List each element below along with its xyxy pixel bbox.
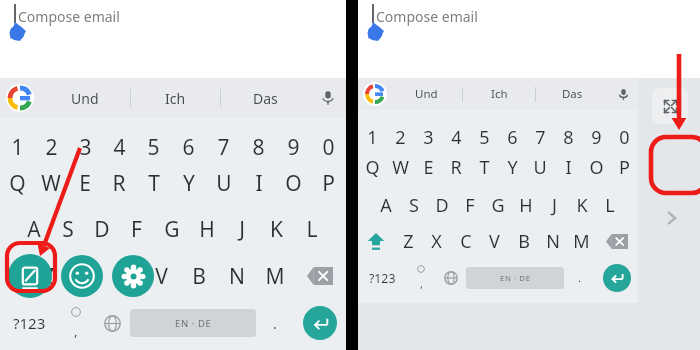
button[interactable]: K (259, 210, 294, 248)
button[interactable]: ?123 (0, 301, 58, 345)
button[interactable]: 8 (554, 118, 582, 156)
button[interactable]: 6 (498, 118, 526, 156)
button[interactable]: 7 (206, 128, 241, 166)
button[interactable]: 0 (311, 128, 346, 166)
button[interactable]: V (142, 256, 180, 296)
button[interactable]: Enter (303, 306, 337, 340)
button[interactable]: U (206, 164, 241, 202)
button[interactable]: L (294, 210, 329, 248)
button[interactable]: Voice input (608, 78, 638, 110)
button[interactable]: G (154, 210, 189, 248)
button[interactable]: Y (171, 164, 206, 202)
button[interactable]: . (564, 260, 595, 296)
button[interactable]: L (596, 186, 624, 224)
button[interactable]: Y (498, 148, 526, 186)
button[interactable]: 9 (582, 118, 610, 156)
button[interactable]: 2 (386, 118, 414, 156)
button[interactable]: 4 (442, 118, 470, 156)
button[interactable]: T (136, 164, 171, 202)
button[interactable]: 3 (414, 118, 442, 156)
button[interactable]: X (67, 256, 104, 296)
button[interactable]: EN · DE (466, 267, 564, 289)
button[interactable]: , (58, 301, 94, 345)
button[interactable]: N (218, 256, 256, 296)
button[interactable]: 9 (276, 128, 311, 166)
button[interactable]: C (104, 256, 142, 296)
button[interactable]: K (568, 186, 596, 224)
button[interactable]: A (17, 210, 51, 248)
button[interactable]: 4 (102, 128, 136, 166)
button[interactable]: 1 (358, 118, 386, 156)
button[interactable]: Ich (131, 78, 220, 118)
button[interactable]: Z (30, 256, 67, 296)
button[interactable]: B (509, 224, 538, 258)
button[interactable]: Change language (94, 301, 130, 345)
button[interactable]: 3 (68, 128, 102, 166)
button[interactable]: S (400, 186, 428, 224)
button[interactable]: ?123 (358, 260, 406, 296)
button[interactable]: F (456, 186, 484, 224)
button[interactable]: J (224, 210, 259, 248)
button[interactable]: I (554, 148, 582, 186)
button[interactable]: O (582, 148, 610, 186)
button[interactable]: Expand keyboard (652, 88, 688, 124)
button[interactable]: A (372, 186, 400, 224)
button[interactable]: S (51, 210, 85, 248)
button[interactable]: M (256, 256, 294, 296)
button[interactable]: E (414, 148, 442, 186)
button[interactable]: D (428, 186, 456, 224)
button[interactable]: Google (0, 78, 40, 118)
button[interactable]: Move keyboard right (658, 204, 686, 232)
button[interactable]: Keyboard option (8, 254, 52, 298)
button[interactable]: 0 (610, 118, 638, 156)
button[interactable]: D (85, 210, 119, 248)
button[interactable]: G (484, 186, 512, 224)
button[interactable]: Ich (463, 78, 535, 110)
button[interactable]: Das (536, 78, 608, 110)
button[interactable]: M (567, 224, 596, 258)
button[interactable]: H (512, 186, 540, 224)
button[interactable]: . (256, 301, 294, 345)
button[interactable]: H (189, 210, 224, 248)
button[interactable]: Q (358, 148, 386, 186)
button[interactable]: R (442, 148, 470, 186)
button[interactable]: Enter (603, 264, 631, 292)
button[interactable]: 6 (171, 128, 206, 166)
button[interactable]: W (386, 148, 414, 186)
button[interactable]: EN · DE (130, 309, 256, 337)
button[interactable]: P (311, 164, 346, 202)
button[interactable]: P (610, 148, 638, 186)
button[interactable]: V (480, 224, 509, 258)
button[interactable]: 8 (241, 128, 276, 166)
button[interactable]: Voice input (310, 78, 346, 118)
button[interactable]: 5 (470, 118, 498, 156)
button[interactable]: Backspace (294, 256, 346, 296)
button[interactable]: 2 (34, 128, 68, 166)
button[interactable]: Shift (358, 224, 394, 258)
button[interactable]: Keyboard option (112, 255, 154, 297)
button[interactable]: , (406, 260, 436, 296)
button[interactable]: Und (391, 78, 462, 110)
button[interactable]: E (68, 164, 102, 202)
button[interactable]: I (241, 164, 276, 202)
button[interactable]: X (422, 224, 451, 258)
button[interactable]: Google (358, 78, 391, 110)
button[interactable]: 5 (136, 128, 171, 166)
button[interactable]: Q (0, 164, 34, 202)
button[interactable]: O (276, 164, 311, 202)
button[interactable]: J (540, 186, 568, 224)
button[interactable]: W (34, 164, 68, 202)
button[interactable]: Backspace (596, 224, 638, 258)
button[interactable]: 7 (526, 118, 554, 156)
button[interactable]: B (180, 256, 218, 296)
button[interactable]: 1 (0, 128, 34, 166)
button[interactable]: Keyboard option (61, 255, 103, 297)
button[interactable]: T (470, 148, 498, 186)
button[interactable]: Das (221, 78, 310, 118)
button[interactable]: N (538, 224, 567, 258)
button[interactable]: C (451, 224, 480, 258)
button[interactable]: Und (40, 78, 130, 118)
button[interactable]: F (119, 210, 154, 248)
button[interactable]: Change language (436, 260, 466, 296)
button[interactable]: Z (394, 224, 422, 258)
